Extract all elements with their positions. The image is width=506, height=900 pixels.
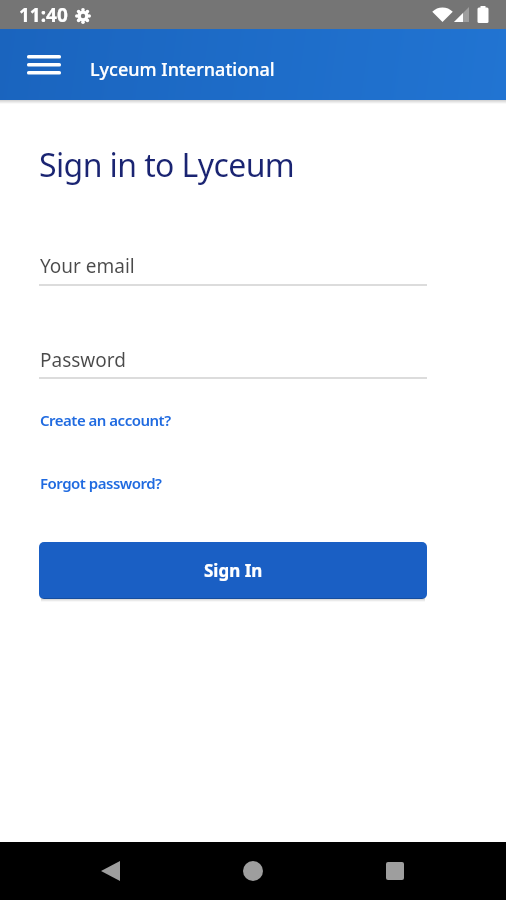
- button[interactable]: [220, 842, 286, 900]
- staticText: Create an account?: [40, 410, 171, 430]
- staticText: Sign in to Lyceum: [39, 143, 295, 187]
- button[interactable]: Create an account?: [39, 406, 170, 426]
- staticText: Forgot password?: [40, 473, 162, 493]
- staticText: Your email: [40, 253, 135, 279]
- button[interactable]: [362, 842, 428, 900]
- button[interactable]: [77, 842, 143, 900]
- button[interactable]: Forgot password?: [39, 469, 161, 489]
- staticText: Lyceum International: [90, 57, 275, 82]
- staticText: Sign In: [204, 559, 263, 582]
- button[interactable]: [17, 50, 71, 90]
- button[interactable]: Sign In: [39, 542, 427, 599]
- staticText: Password: [40, 347, 126, 373]
- staticText: 11:40: [19, 2, 68, 28]
